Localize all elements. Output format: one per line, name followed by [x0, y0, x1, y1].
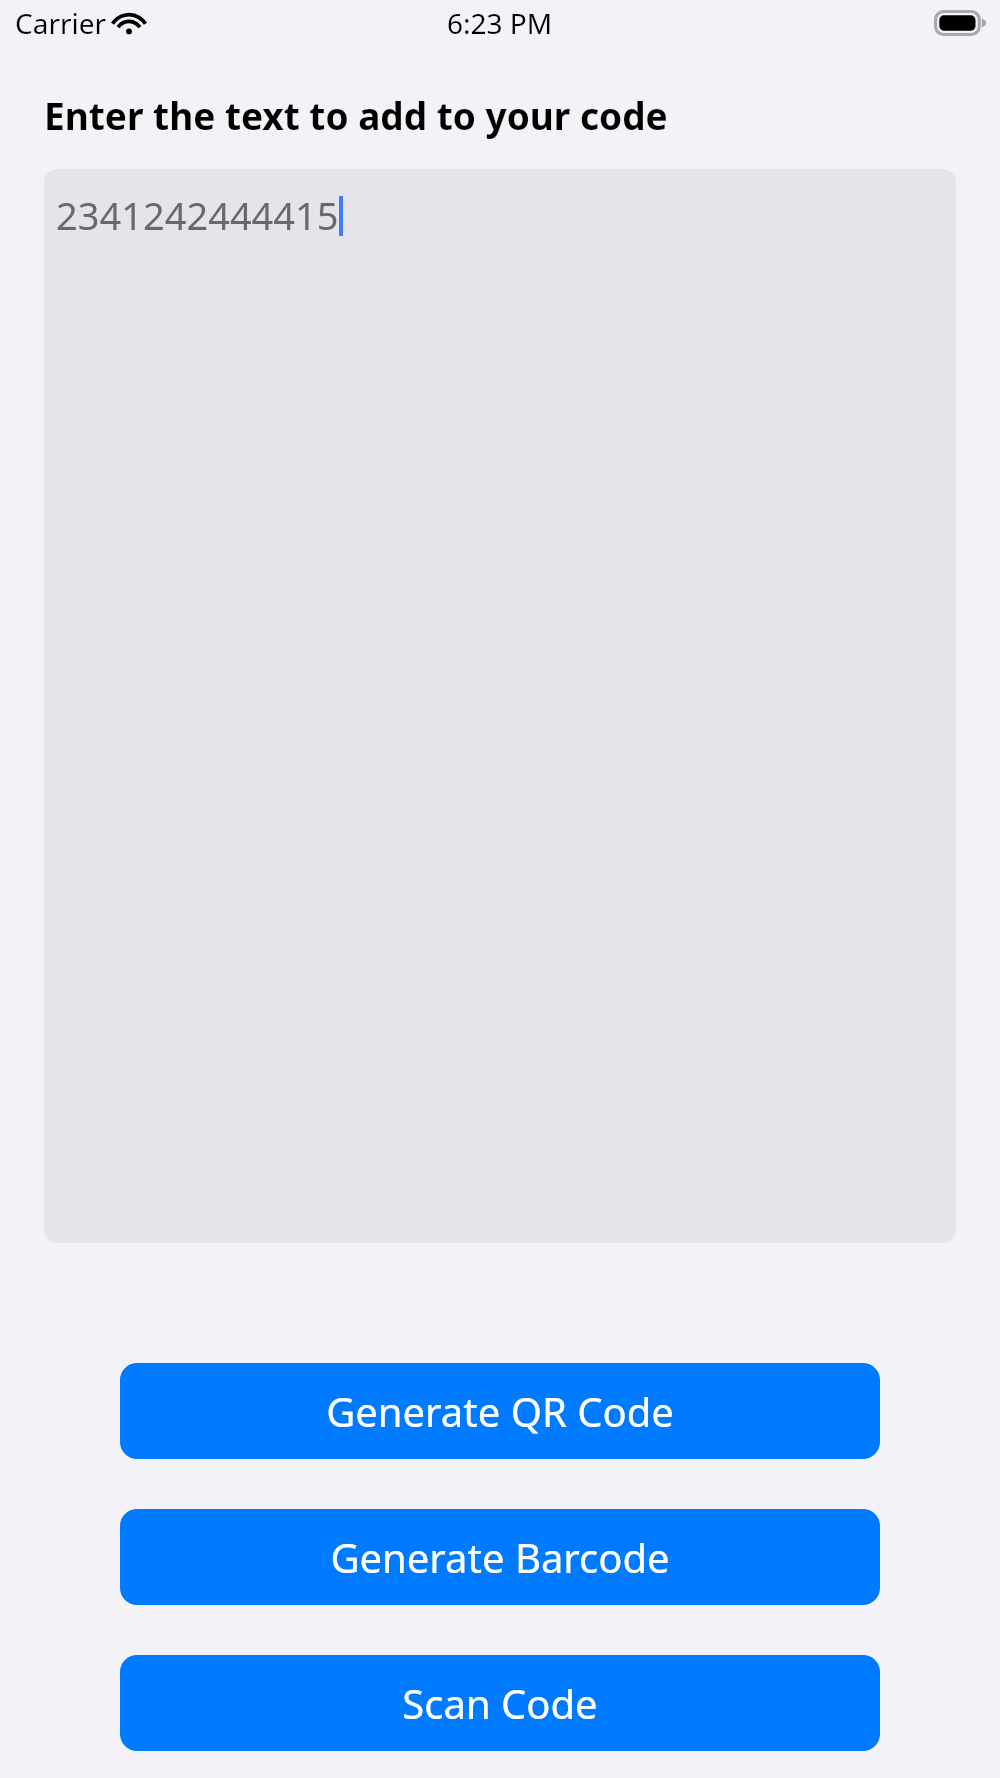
staticText: Carrier [15, 4, 107, 42]
button[interactable]: Generate QR Code [120, 1363, 880, 1459]
staticText: Scan Code [402, 1676, 598, 1730]
staticText: Generate QR Code [326, 1384, 674, 1438]
button[interactable]: Generate Barcode [120, 1509, 880, 1605]
staticText: 6:23 PM [447, 4, 553, 42]
staticText: 2341242444415 [56, 189, 339, 241]
button[interactable]: 2341242444415 [44, 169, 956, 1243]
other: Wi-Fi [115, 13, 143, 35]
button[interactable]: Scan Code [120, 1655, 880, 1751]
other: Battery full [934, 10, 986, 36]
staticText: Generate Barcode [330, 1530, 670, 1584]
staticText: Enter the text to add to your code [44, 90, 668, 140]
